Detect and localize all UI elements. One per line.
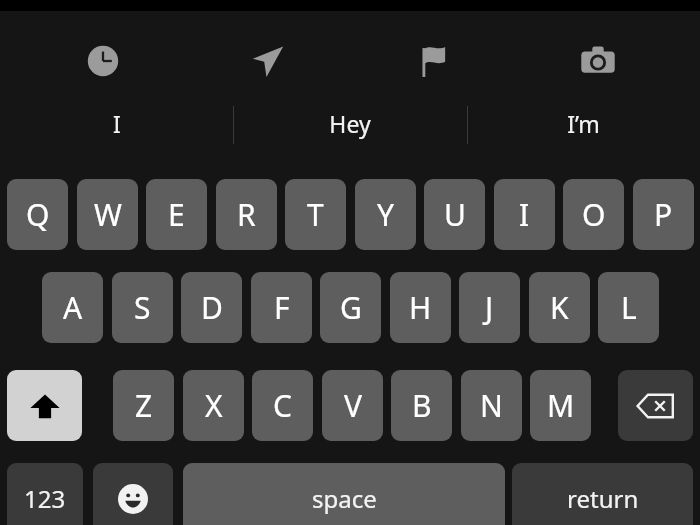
button[interactable]: B: [391, 370, 452, 441]
staticText: I: [113, 108, 121, 139]
button[interactable]: O: [563, 179, 624, 250]
button[interactable]: Camera: [566, 29, 630, 93]
button[interactable]: K: [529, 272, 590, 343]
button[interactable]: E: [146, 179, 207, 250]
staticText: S: [134, 287, 151, 328]
button[interactable]: A: [42, 272, 103, 343]
button[interactable]: S: [112, 272, 173, 343]
staticText: Y: [377, 194, 394, 235]
button[interactable]: Y: [355, 179, 416, 250]
button[interactable]: Flag: [401, 29, 465, 93]
button[interactable]: Z: [113, 370, 174, 441]
staticText: B: [412, 385, 432, 426]
staticText: return: [567, 482, 639, 515]
button[interactable]: H: [390, 272, 451, 343]
staticText: U: [444, 194, 466, 235]
staticText: F: [274, 287, 290, 328]
staticText: P: [654, 194, 673, 235]
staticText: space: [312, 482, 377, 515]
staticText: R: [237, 194, 256, 235]
button[interactable]: Emoji: [93, 463, 173, 525]
button[interactable]: Location: [236, 29, 300, 93]
button[interactable]: P: [633, 179, 694, 250]
button[interactable]: I: [494, 179, 555, 250]
button[interactable]: return: [512, 463, 693, 525]
staticText: D: [201, 287, 223, 328]
button[interactable]: X: [183, 370, 244, 441]
button[interactable]: N: [461, 370, 522, 441]
button[interactable]: I: [0, 89, 233, 157]
staticText: G: [340, 287, 362, 328]
staticText: E: [168, 194, 185, 235]
staticText: W: [94, 194, 122, 235]
staticText: O: [582, 194, 606, 235]
button[interactable]: 123: [7, 463, 83, 525]
button[interactable]: space: [183, 463, 505, 525]
staticText: V: [344, 385, 362, 426]
button[interactable]: W: [77, 179, 138, 250]
staticText: H: [409, 287, 432, 328]
button[interactable]: Recents: [71, 29, 135, 93]
staticText: Q: [26, 194, 50, 235]
button[interactable]: Delete: [618, 370, 693, 441]
button[interactable]: R: [216, 179, 277, 250]
button[interactable]: M: [530, 370, 591, 441]
button[interactable]: G: [320, 272, 381, 343]
button[interactable]: V: [322, 370, 383, 441]
button[interactable]: I’m: [467, 89, 700, 157]
button[interactable]: Shift: [7, 370, 82, 441]
staticText: I: [519, 194, 530, 235]
button[interactable]: Hey: [233, 89, 467, 157]
staticText: X: [205, 385, 223, 426]
staticText: Z: [135, 385, 153, 426]
button[interactable]: T: [285, 179, 346, 250]
staticText: M: [547, 385, 575, 426]
button[interactable]: L: [598, 272, 659, 343]
button[interactable]: U: [424, 179, 485, 250]
button[interactable]: F: [251, 272, 312, 343]
button[interactable]: J: [459, 272, 520, 343]
button[interactable]: C: [252, 370, 313, 441]
staticText: N: [480, 385, 503, 426]
staticText: 123: [24, 482, 66, 515]
staticText: T: [307, 194, 324, 235]
staticText: Hey: [329, 108, 371, 139]
staticText: C: [273, 385, 292, 426]
staticText: K: [550, 287, 569, 328]
button[interactable]: D: [181, 272, 242, 343]
staticText: L: [621, 287, 637, 328]
staticText: I’m: [567, 108, 600, 139]
button[interactable]: Q: [7, 179, 68, 250]
staticText: J: [485, 287, 494, 328]
staticText: A: [63, 287, 83, 328]
